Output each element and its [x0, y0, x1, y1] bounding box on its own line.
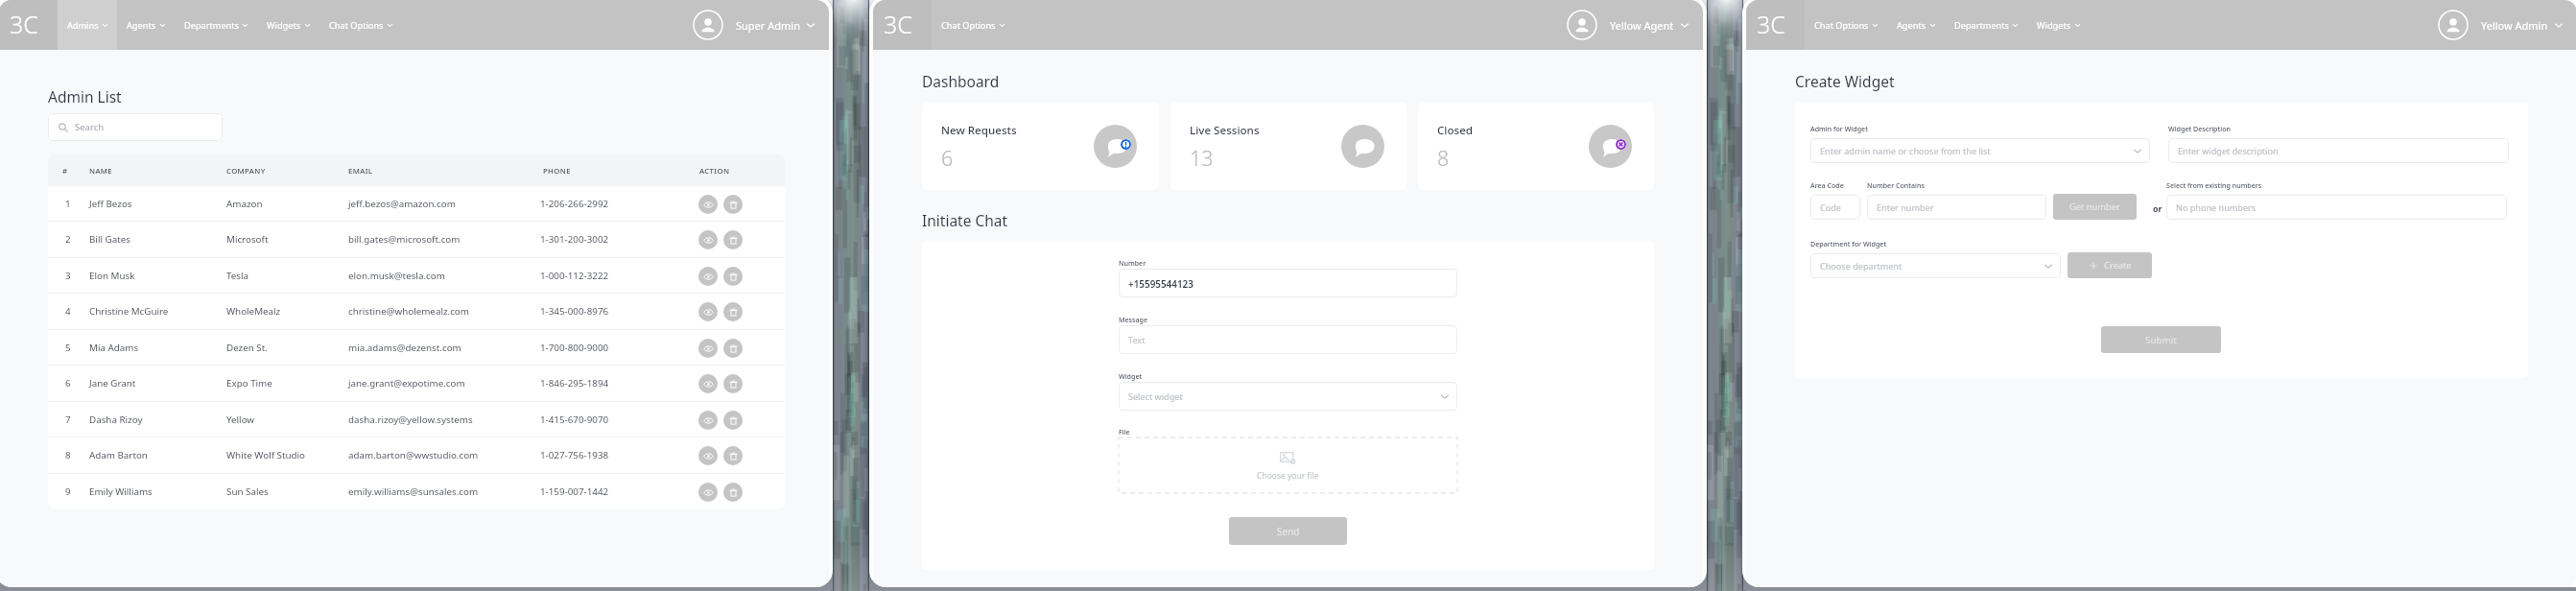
- staticText: Enter widget description: [2178, 145, 2279, 156]
- staticText: Amazon: [226, 198, 263, 210]
- button[interactable]: 3: [48, 258, 785, 293]
- staticText: Create Widget: [1795, 71, 1895, 91]
- staticText: Submit: [2145, 334, 2177, 346]
- staticText: Christine McGuire: [89, 305, 169, 318]
- button[interactable]: +15595544123: [1119, 269, 1457, 297]
- button[interactable]: Text: [1119, 325, 1457, 354]
- button[interactable]: Delete: [723, 230, 743, 249]
- staticText: Chat Options: [941, 19, 996, 32]
- staticText: 3C: [10, 8, 38, 40]
- button[interactable]: 3C: [1746, 0, 1805, 50]
- button[interactable]: Delete: [723, 339, 743, 358]
- button[interactable]: Select widget: [1119, 382, 1457, 411]
- button[interactable]: Delete: [723, 267, 743, 286]
- button[interactable]: Chat Options: [1805, 0, 1887, 50]
- button[interactable]: View: [698, 483, 718, 502]
- button[interactable]: Widgets: [2027, 0, 2090, 50]
- staticText: 13: [1190, 144, 1214, 172]
- button[interactable]: 4: [48, 294, 785, 329]
- button[interactable]: Chat Options: [319, 0, 402, 50]
- staticText: 1-206-266-2992: [540, 198, 609, 210]
- button[interactable]: View: [698, 339, 718, 358]
- staticText: Chat Options: [329, 19, 384, 32]
- button[interactable]: View: [698, 230, 718, 249]
- button[interactable]: Choose your file: [1119, 437, 1457, 493]
- button[interactable]: 2: [48, 222, 785, 257]
- staticText: Widget Description: [2168, 124, 2231, 133]
- staticText: Emily Williams: [89, 485, 153, 498]
- staticText: WholeMealz: [226, 305, 281, 318]
- button[interactable]: Create: [2068, 252, 2152, 278]
- button[interactable]: Send: [1229, 517, 1347, 545]
- button[interactable]: Delete: [723, 446, 743, 465]
- staticText: Admin for Widget: [1810, 124, 1868, 133]
- button[interactable]: 6: [48, 366, 785, 401]
- button[interactable]: Delete: [723, 302, 743, 321]
- staticText: Agents: [1897, 19, 1926, 32]
- button[interactable]: No phone numbers: [2166, 195, 2507, 220]
- button[interactable]: Submit: [2101, 326, 2221, 353]
- button[interactable]: Delete: [723, 411, 743, 430]
- staticText: Message: [1119, 315, 1148, 324]
- staticText: mia.adams@dezenst.com: [348, 342, 461, 354]
- button[interactable]: View: [698, 446, 718, 465]
- button[interactable]: Yellow Agent: [1567, 0, 1703, 50]
- staticText: Yellow Agent: [1610, 18, 1674, 33]
- staticText: jane.grant@expotime.com: [348, 377, 465, 390]
- button[interactable]: 3C: [873, 0, 932, 50]
- staticText: NAME: [89, 166, 113, 177]
- button[interactable]: Get number: [2053, 194, 2137, 220]
- staticText: 1: [65, 198, 71, 210]
- button[interactable]: Enter widget description: [2168, 138, 2509, 163]
- button[interactable]: Departments: [1945, 0, 2027, 50]
- button[interactable]: View: [698, 267, 718, 286]
- button[interactable]: 7: [48, 402, 785, 437]
- staticText: PHONE: [543, 166, 571, 177]
- button[interactable]: Code: [1810, 195, 1860, 220]
- staticText: christine@wholemealz.com: [348, 305, 469, 318]
- button[interactable]: Delete: [723, 483, 743, 502]
- staticText: jeff.bezos@amazon.com: [348, 198, 456, 210]
- button[interactable]: Admins: [58, 0, 117, 50]
- staticText: 1-846-295-1894: [540, 377, 609, 390]
- staticText: Jeff Bezos: [89, 198, 132, 210]
- button[interactable]: Widgets: [257, 0, 319, 50]
- button[interactable]: Agents: [117, 0, 175, 50]
- button[interactable]: 8: [48, 437, 785, 473]
- button[interactable]: 3C: [0, 0, 58, 50]
- button[interactable]: New Requests: [922, 103, 1159, 190]
- button[interactable]: View: [698, 195, 718, 214]
- button[interactable]: View: [698, 302, 718, 321]
- button[interactable]: Search: [48, 113, 223, 141]
- button[interactable]: 5: [48, 330, 785, 365]
- button[interactable]: Enter number: [1867, 195, 2046, 220]
- button[interactable]: Delete: [723, 374, 743, 393]
- button[interactable]: Yellow Admin: [2438, 0, 2576, 50]
- staticText: Jane Grant: [89, 377, 136, 390]
- staticText: elon.musk@tesla.com: [348, 270, 445, 282]
- staticText: Enter number: [1877, 201, 1934, 213]
- staticText: 6: [941, 144, 954, 172]
- button[interactable]: Closed: [1418, 103, 1654, 190]
- staticText: Chat Options: [1814, 19, 1869, 32]
- staticText: Mia Adams: [89, 342, 139, 354]
- staticText: Area Code: [1810, 180, 1844, 190]
- staticText: Choose your file: [1257, 470, 1319, 482]
- button[interactable]: View: [698, 411, 718, 430]
- button[interactable]: Departments: [175, 0, 257, 50]
- button[interactable]: Super Admin: [693, 0, 829, 50]
- staticText: Select widget: [1128, 390, 1183, 402]
- staticText: 3: [65, 270, 71, 282]
- button[interactable]: Live Sessions: [1170, 103, 1406, 190]
- button[interactable]: 9: [48, 474, 785, 508]
- button[interactable]: Choose department: [1810, 253, 2061, 278]
- button[interactable]: Chat Options: [932, 0, 1014, 50]
- button[interactable]: View: [698, 374, 718, 393]
- staticText: 1-415-670-9070: [540, 414, 609, 426]
- button[interactable]: Agents: [1887, 0, 1945, 50]
- button[interactable]: 1: [48, 186, 785, 221]
- button[interactable]: Enter admin name or choose from the list: [1810, 138, 2150, 163]
- staticText: Widget: [1119, 371, 1143, 381]
- button[interactable]: Delete: [723, 195, 743, 214]
- staticText: COMPANY: [226, 166, 266, 177]
